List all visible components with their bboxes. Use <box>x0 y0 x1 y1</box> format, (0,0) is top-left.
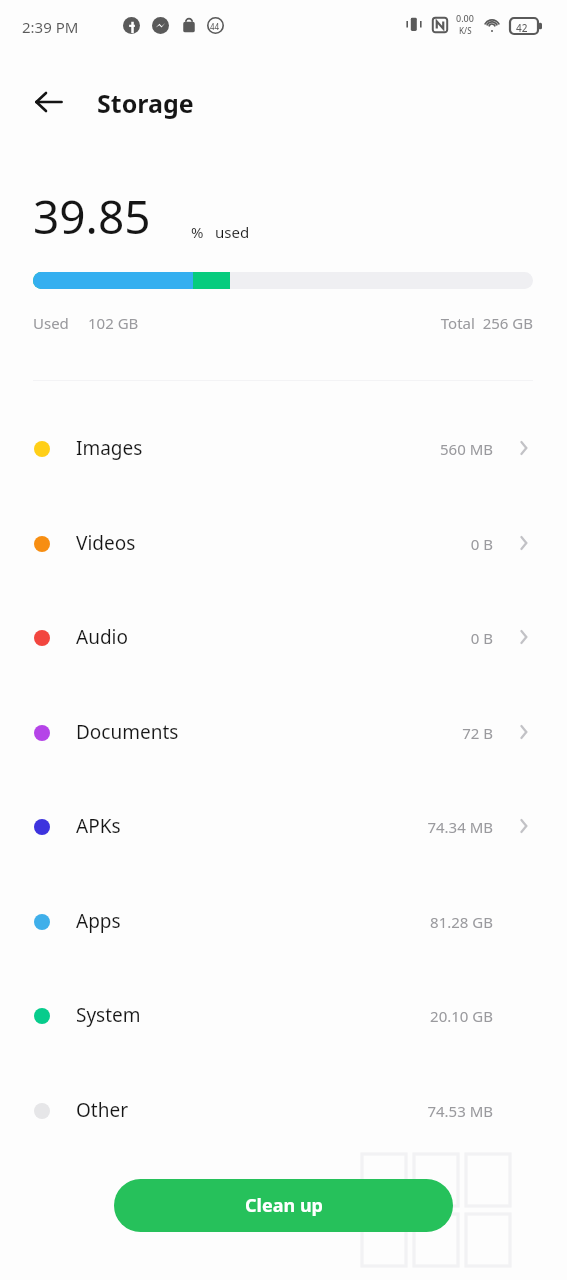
button[interactable]: Images <box>0 402 567 496</box>
staticText: APKs <box>76 813 121 839</box>
staticText: % <box>191 222 204 242</box>
staticText: Used <box>33 313 69 333</box>
staticText: Videos <box>76 530 136 556</box>
staticText: Total 256 GB <box>273 313 533 333</box>
staticText: 74.34 MB <box>233 817 493 837</box>
staticText: Storage <box>97 86 194 120</box>
button[interactable]: Apps <box>0 875 567 969</box>
staticText: 39.85 <box>33 185 151 248</box>
staticText: 44 <box>210 21 220 32</box>
button[interactable]: Audio <box>0 591 567 685</box>
staticText: 0.00 <box>456 12 474 24</box>
button[interactable]: Videos <box>0 497 567 591</box>
button[interactable]: Back <box>26 79 72 125</box>
staticText: 81.28 GB <box>233 912 493 932</box>
staticText: Documents <box>76 719 179 745</box>
button[interactable]: Clean up <box>114 1179 453 1232</box>
staticText: 2:39 PM <box>22 17 79 37</box>
staticText: 42 <box>516 21 528 35</box>
staticText: used <box>215 222 250 242</box>
staticText: 0 B <box>233 628 493 648</box>
staticText: 72 B <box>233 723 493 743</box>
staticText: 74.53 MB <box>233 1101 493 1121</box>
staticText: 20.10 GB <box>233 1006 493 1026</box>
button[interactable]: APKs <box>0 780 567 874</box>
staticText: System <box>76 1002 141 1028</box>
staticText: 0 B <box>233 534 493 554</box>
staticText: Clean up <box>245 1193 323 1218</box>
button[interactable]: System <box>0 969 567 1063</box>
staticText: 560 MB <box>233 439 493 459</box>
staticText: Images <box>76 435 143 461</box>
staticText: Other <box>76 1097 129 1123</box>
button[interactable]: Documents <box>0 686 567 780</box>
staticText: Apps <box>76 908 121 934</box>
staticText: K/S <box>459 25 472 36</box>
staticText: Audio <box>76 624 128 650</box>
staticText: 102 GB <box>88 313 139 333</box>
button[interactable]: Other <box>0 1064 567 1158</box>
